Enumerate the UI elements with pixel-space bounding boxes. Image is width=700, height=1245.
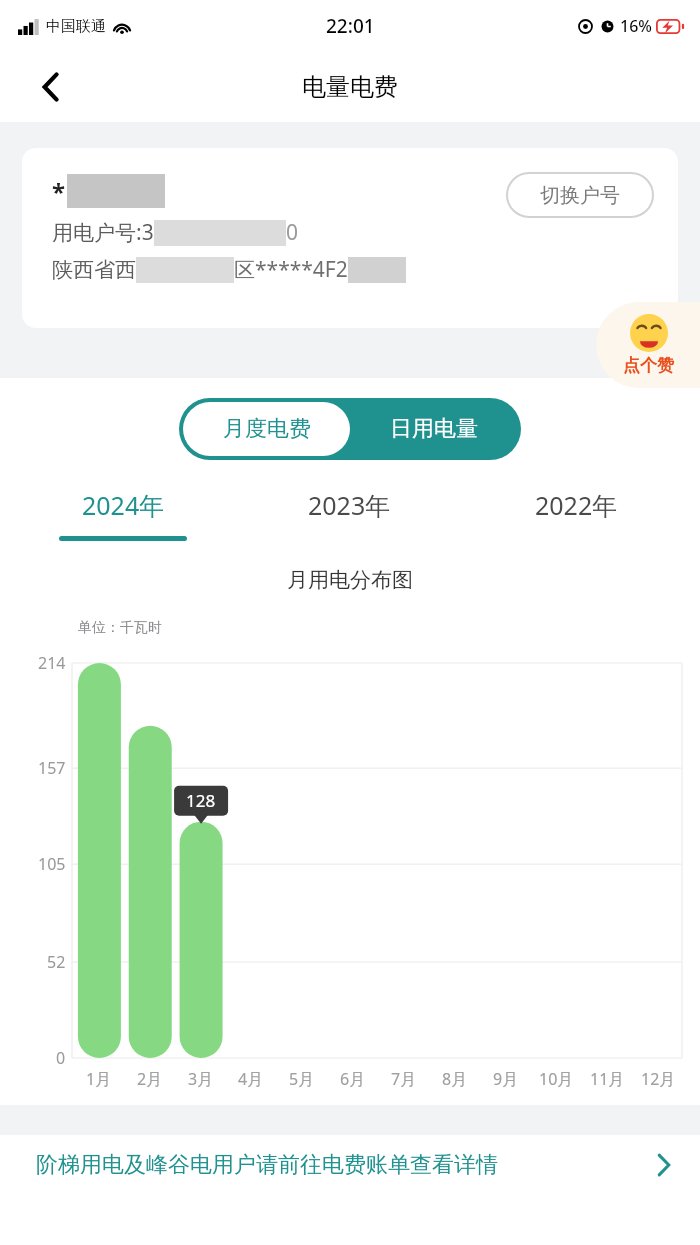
staticText: 10月 xyxy=(539,1068,574,1090)
staticText: 3月 xyxy=(188,1068,214,1090)
staticText: 12月 xyxy=(641,1068,676,1090)
staticText: 点个赞 xyxy=(623,355,674,376)
staticText: 2月 xyxy=(137,1068,163,1090)
staticText: 7月 xyxy=(391,1068,417,1090)
button[interactable]: Back xyxy=(28,64,74,110)
staticText: 中国联通 xyxy=(46,17,106,36)
staticText: 214 xyxy=(38,652,66,674)
button[interactable]: 日用电量 xyxy=(350,402,517,456)
button[interactable]: 切换户号 xyxy=(506,172,654,218)
staticText: 电量电费 xyxy=(302,72,398,102)
staticText: 52 xyxy=(47,951,66,973)
staticText: 用电户号:3 xyxy=(52,218,154,247)
staticText: 8月 xyxy=(442,1068,468,1090)
staticText: 16% xyxy=(620,15,652,37)
staticText: 2024年 xyxy=(82,488,165,522)
staticText: 1月 xyxy=(86,1068,112,1090)
button[interactable]: 点个赞 xyxy=(596,302,700,388)
button[interactable]: * xyxy=(22,148,678,328)
staticText: 区*****4F2 xyxy=(234,255,348,284)
staticText: 2022年 xyxy=(535,488,618,522)
staticText: * xyxy=(52,175,66,208)
button[interactable]: 月度电费 xyxy=(183,402,350,456)
staticText: 陕西省西 xyxy=(52,257,136,283)
staticText: 单位：千瓦时 xyxy=(78,619,162,637)
staticText: 11月 xyxy=(590,1068,625,1090)
staticText: 157 xyxy=(38,757,66,779)
staticText: 128 xyxy=(186,789,216,812)
staticText: 4月 xyxy=(238,1068,264,1090)
staticText: 切换户号 xyxy=(540,183,620,208)
staticText: 9月 xyxy=(493,1068,519,1090)
staticText: 105 xyxy=(38,853,66,875)
staticText: 阶梯用电及峰谷电用户请前往电费账单查看详情 xyxy=(36,1151,656,1179)
button[interactable]: 2023年 xyxy=(236,488,463,541)
button[interactable]: 2024年 xyxy=(10,488,236,541)
staticText: 0 xyxy=(56,1047,66,1069)
staticText: 日用电量 xyxy=(390,415,478,443)
button[interactable]: 阶梯用电及峰谷电用户请前往电费账单查看详情 xyxy=(0,1135,700,1195)
staticText: 月用电分布图 xyxy=(0,567,700,593)
staticText: 22:01 xyxy=(326,13,375,39)
staticText: 2023年 xyxy=(308,488,391,522)
staticText: 0 xyxy=(286,218,299,247)
button[interactable]: 2022年 xyxy=(463,488,690,541)
staticText: 6月 xyxy=(340,1068,366,1090)
staticText: 5月 xyxy=(289,1068,315,1090)
staticText: 月度电费 xyxy=(223,415,311,443)
